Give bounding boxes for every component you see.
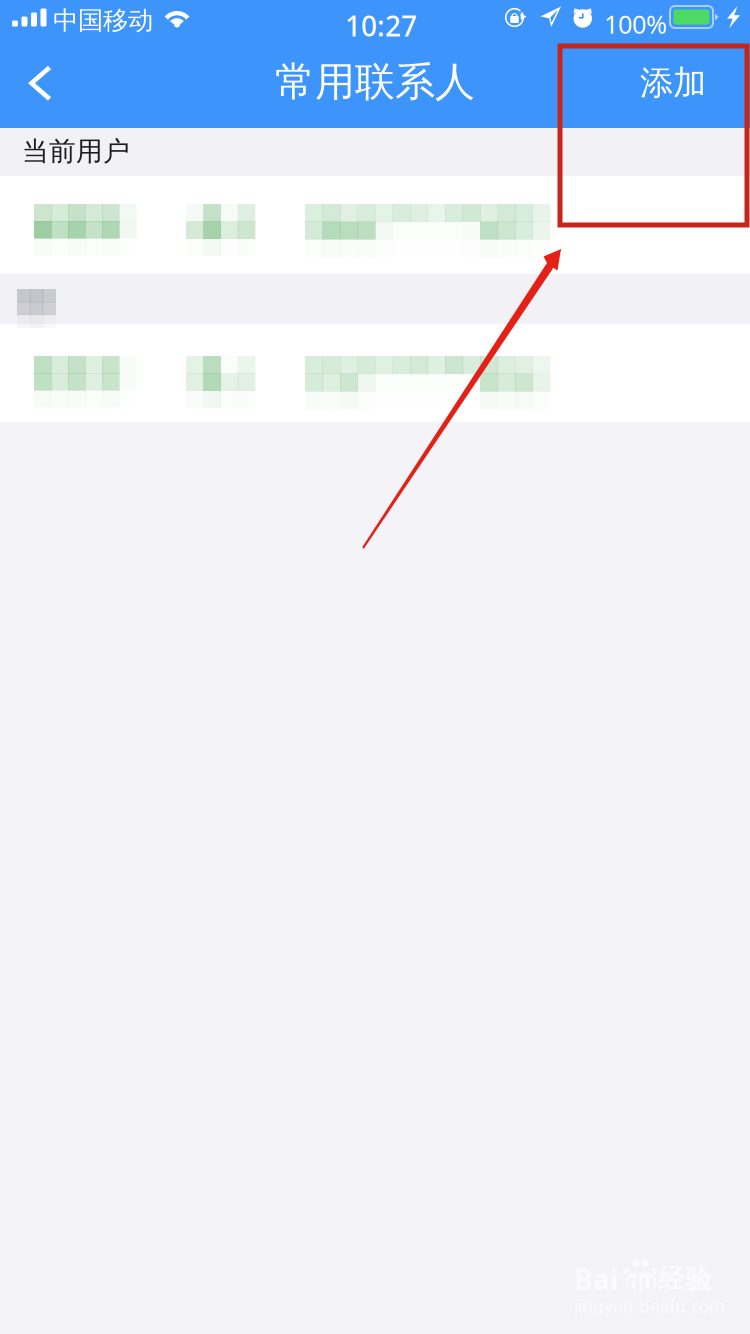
button[interactable]: 返回 <box>0 38 82 128</box>
button[interactable]: 添加 <box>610 38 736 128</box>
staticText: 当前用户 <box>22 135 130 168</box>
staticText: 10:27 <box>345 7 417 44</box>
staticText: 100% <box>604 7 667 41</box>
staticText: 经验 <box>658 1263 712 1295</box>
staticText: du <box>626 1267 655 1297</box>
staticText: 常用联系人 <box>275 57 475 106</box>
staticText: 中国移动 <box>53 5 153 36</box>
staticText: 添加 <box>640 62 706 103</box>
